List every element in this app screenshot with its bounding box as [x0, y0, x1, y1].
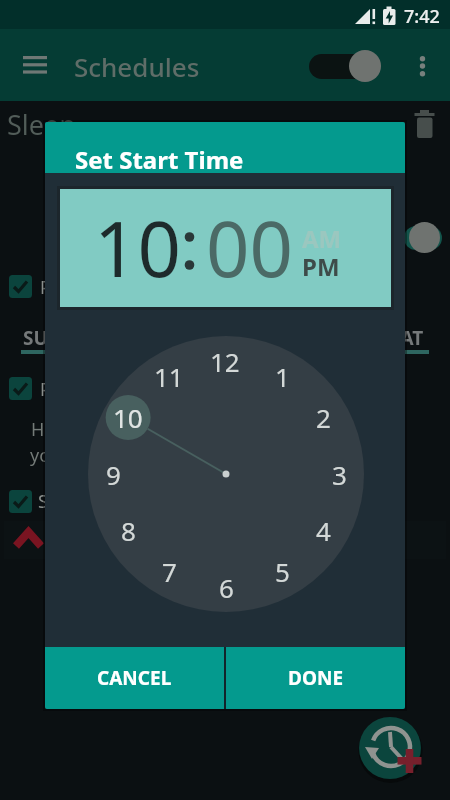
- staticText: H: [31, 417, 45, 442]
- staticText: 11: [154, 359, 184, 394]
- staticText: DONE: [288, 665, 344, 691]
- staticText: 7: [162, 554, 177, 589]
- staticText: SU: [23, 325, 48, 351]
- staticText: AM: [302, 222, 342, 255]
- staticText: P: [40, 377, 51, 402]
- button[interactable]: [9, 377, 32, 400]
- button[interactable]: [309, 54, 372, 79]
- staticText: P: [40, 275, 51, 300]
- staticText: 10: [94, 196, 181, 300]
- staticText: 4: [316, 513, 331, 548]
- staticText: 1: [275, 359, 290, 394]
- button[interactable]: [300, 252, 344, 280]
- staticText: 3: [332, 457, 347, 492]
- staticText: 2: [316, 400, 331, 435]
- button[interactable]: [9, 490, 32, 513]
- button[interactable]: [18, 50, 54, 82]
- staticText: CANCEL: [97, 665, 172, 691]
- staticText: 7:42: [404, 4, 440, 29]
- staticText: Schedules: [74, 49, 200, 84]
- staticText: PM: [302, 250, 340, 283]
- staticText: 8: [121, 513, 136, 548]
- staticText: SAT: [390, 325, 424, 351]
- button[interactable]: CANCEL: [45, 647, 224, 709]
- button[interactable]: [301, 223, 345, 251]
- staticText: Set Start Time: [75, 143, 244, 176]
- staticText: 6: [219, 570, 234, 605]
- staticText: S: [38, 489, 48, 514]
- button[interactable]: [359, 717, 421, 779]
- staticText: 10: [113, 400, 143, 435]
- button[interactable]: DONE: [226, 647, 405, 709]
- button[interactable]: [9, 275, 32, 298]
- staticText: 12: [210, 344, 240, 379]
- staticText: yo: [30, 443, 51, 468]
- staticText: 00: [206, 196, 293, 300]
- staticText: 9: [106, 457, 121, 492]
- staticText: 5: [275, 554, 290, 589]
- button[interactable]: [408, 50, 440, 84]
- staticText: Sleep: [7, 106, 76, 143]
